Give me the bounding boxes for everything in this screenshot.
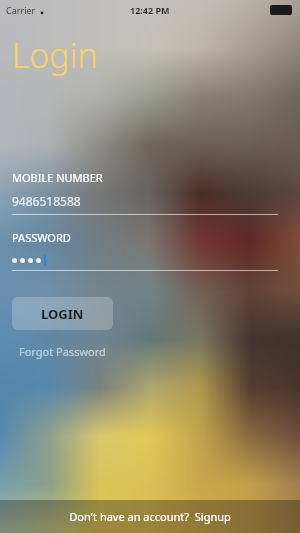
staticText: 12:42 PM	[130, 4, 170, 16]
staticText: MOBILE NUMBER	[12, 170, 103, 185]
staticText: 9486518588	[12, 193, 81, 209]
button[interactable]: Forgot Password	[12, 338, 113, 364]
button[interactable]: LOGIN	[12, 297, 113, 330]
staticText: PASSWORD	[12, 230, 71, 245]
staticText: Don't have an account? Signup	[69, 509, 231, 524]
staticText: Login	[12, 32, 99, 78]
staticText: LOGIN	[41, 305, 84, 323]
button[interactable]: Don't have an account? Signup	[0, 500, 300, 533]
staticText: Carrier	[6, 4, 36, 16]
staticText: Forgot Password	[19, 344, 106, 359]
